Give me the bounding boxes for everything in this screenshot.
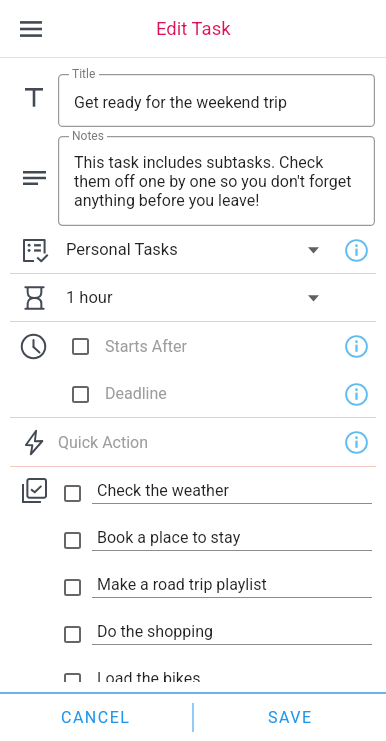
button[interactable]: Info (341, 331, 371, 361)
button[interactable]: Book a place to stay (0, 516, 386, 563)
button[interactable]: SAVE (194, 694, 386, 741)
staticText: Check the weather (97, 481, 229, 500)
button[interactable]: Starts After (0, 322, 386, 370)
button[interactable]: Do the shopping (0, 610, 386, 657)
staticText: Get ready for the weekend trip (74, 93, 287, 112)
staticText: Deadline (105, 384, 341, 403)
staticText: Do the shopping (97, 622, 213, 641)
button[interactable]: CANCEL (0, 694, 192, 741)
staticText: 1 hour (66, 288, 303, 307)
staticText: SAVE (268, 708, 313, 727)
button[interactable]: Info (341, 235, 371, 265)
button[interactable]: Check the weather (0, 469, 386, 516)
staticText: Title (72, 67, 96, 81)
staticText: Quick Action (58, 433, 341, 452)
button[interactable]: 1 hour (0, 274, 386, 321)
button[interactable]: Load the bikes (0, 657, 386, 682)
staticText: Load the bikes (97, 669, 201, 682)
button[interactable]: Info (341, 427, 371, 457)
button[interactable]: Deadline (0, 370, 386, 417)
staticText: Make a road trip playlist (97, 575, 267, 594)
staticText: Notes (72, 129, 104, 143)
button[interactable]: Make a road trip playlist (0, 563, 386, 610)
staticText: Starts After (105, 337, 341, 356)
staticText: CANCEL (61, 708, 131, 727)
button[interactable]: Menu (9, 7, 53, 51)
staticText: Edit Task (156, 18, 231, 40)
button[interactable]: Personal Tasks (0, 226, 386, 273)
staticText: Personal Tasks (66, 240, 303, 259)
button[interactable]: Info (341, 379, 371, 409)
button[interactable]: Quick Action (0, 418, 386, 466)
staticText: This task includes subtasks. Check them … (74, 153, 352, 210)
staticText: Book a place to stay (97, 528, 241, 547)
